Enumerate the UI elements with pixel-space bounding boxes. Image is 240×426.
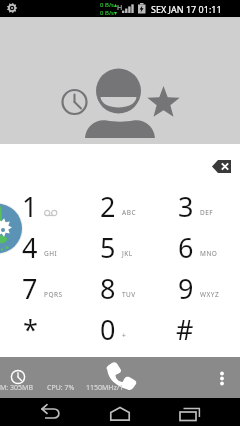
- staticText: #: [176, 311, 194, 348]
- staticText: DEF: [200, 208, 214, 217]
- button[interactable]: 2: [78, 186, 156, 227]
- button[interactable]: 8: [78, 268, 156, 309]
- staticText: 0: [100, 311, 116, 348]
- button[interactable]: 1: [0, 186, 78, 227]
- staticText: TUV: [122, 290, 136, 299]
- button[interactable]: More options: [212, 363, 232, 383]
- staticText: *: [23, 311, 38, 348]
- button[interactable]: #: [156, 309, 234, 350]
- staticText: 4: [22, 229, 38, 266]
- button[interactable]: 9: [156, 268, 234, 309]
- staticText: 6: [178, 229, 194, 266]
- button[interactable]: Recents: [175, 401, 205, 425]
- staticText: JKL: [122, 249, 133, 258]
- button[interactable]: Home: [105, 401, 135, 425]
- staticText: 3: [178, 188, 194, 225]
- staticText: CPU: 7%: [47, 383, 75, 393]
- staticText: 8: [100, 270, 116, 307]
- button[interactable]: 7: [0, 268, 78, 309]
- staticText: MNO: [200, 249, 218, 258]
- button[interactable]: 0: [78, 309, 156, 350]
- button[interactable]: Call: [104, 362, 136, 391]
- button[interactable]: *: [0, 309, 78, 350]
- button[interactable]: 6: [156, 227, 234, 268]
- staticText: H: [117, 3, 123, 13]
- staticText: 9: [178, 270, 194, 307]
- button[interactable]: 4: [0, 227, 78, 268]
- staticText: PQRS: [44, 290, 63, 299]
- staticText: 1150MHz/1: [86, 383, 124, 393]
- staticText: 0 B/s▴: [100, 1, 118, 9]
- staticText: GHI: [44, 249, 58, 258]
- staticText: 1: [22, 188, 38, 225]
- staticText: 5: [100, 229, 116, 266]
- button[interactable]: Backspace: [209, 157, 234, 174]
- button[interactable]: Recent calls: [4, 363, 32, 391]
- button[interactable]: 3: [156, 186, 234, 227]
- staticText: 0 B/s▾: [100, 9, 118, 17]
- staticText: ABC: [122, 208, 136, 217]
- staticText: +: [122, 331, 127, 340]
- button[interactable]: Back: [36, 401, 68, 425]
- staticText: SEX JAN 17 01:11: [151, 3, 222, 15]
- staticText: 7: [22, 270, 38, 307]
- button[interactable]: 5: [78, 227, 156, 268]
- staticText: M: 305MB: [0, 383, 33, 393]
- staticText: WXYZ: [200, 290, 220, 299]
- staticText: 2: [100, 188, 116, 225]
